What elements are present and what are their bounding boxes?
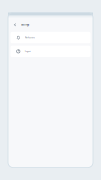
staticText: Notifications	[25, 36, 35, 39]
button[interactable]: Logout	[10, 46, 90, 57]
button[interactable]: Notifications	[10, 32, 90, 43]
staticText: Settings	[21, 23, 29, 26]
staticText: Logout	[25, 50, 31, 52]
button[interactable]: Back	[11, 21, 18, 28]
